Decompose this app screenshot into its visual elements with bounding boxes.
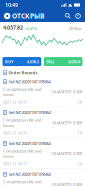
staticText: Completed profits and losses bbox=[3, 148, 41, 159]
staticText: Completed profits and losses bbox=[3, 86, 41, 97]
staticText: 20 Mar bbox=[69, 26, 82, 31]
button[interactable]: Sell NZ 20201747 078364 bbox=[0, 76, 85, 107]
staticText: 2021-12 03:17 bbox=[3, 99, 27, 105]
button[interactable]: SELL bbox=[44, 57, 83, 66]
staticText: 10:49 bbox=[5, 1, 18, 9]
staticText: ОТСКРЫВ bbox=[12, 12, 44, 20]
button[interactable]: Sell NZ 20201747 078364 bbox=[0, 169, 85, 186]
staticText: 2021-12 03:17 bbox=[3, 130, 27, 135]
button[interactable]: BUY bbox=[2, 57, 41, 66]
button[interactable]: Sell NZ 20201747 078364 bbox=[0, 138, 85, 169]
staticText: QUANTITY: 0.300 bbox=[52, 89, 82, 94]
staticText: Sell NZ 20201747 078364 bbox=[9, 79, 51, 84]
staticText: 4,038.2 bbox=[27, 59, 39, 64]
staticText: Sell NZ 20201747 078364 bbox=[9, 141, 51, 146]
staticText: 7.8 bbox=[77, 130, 82, 135]
staticText: 7.8 bbox=[77, 161, 82, 166]
button[interactable]: Search bbox=[65, 13, 71, 19]
staticText: 4,036.8 bbox=[68, 59, 80, 64]
staticText: QUANTITY: 0.300 bbox=[52, 151, 82, 156]
staticText: SELL bbox=[46, 59, 54, 64]
button[interactable]: Sell NZ 20201747 078364 bbox=[0, 107, 85, 138]
staticText: 7.8 bbox=[77, 99, 82, 105]
staticText: Completed profits and losses bbox=[3, 117, 41, 128]
staticText: 2021-12 03:17 bbox=[3, 161, 27, 166]
staticText: Completed profits and losses bbox=[3, 179, 41, 186]
staticText: +0.41% bbox=[25, 26, 37, 31]
staticText: QUANTITY: 0.300 bbox=[52, 182, 82, 186]
button[interactable]: Help bbox=[75, 13, 81, 19]
staticText: Sell NZ 20201747 078364 bbox=[9, 110, 51, 115]
staticText: QUANTITY: 0.300 bbox=[52, 120, 82, 125]
staticText: Sell NZ 20201747 078364 bbox=[9, 171, 51, 177]
staticText: BUY bbox=[5, 59, 14, 64]
staticText: Order Records bbox=[9, 70, 38, 75]
staticText: 4,037.82 bbox=[3, 24, 23, 31]
